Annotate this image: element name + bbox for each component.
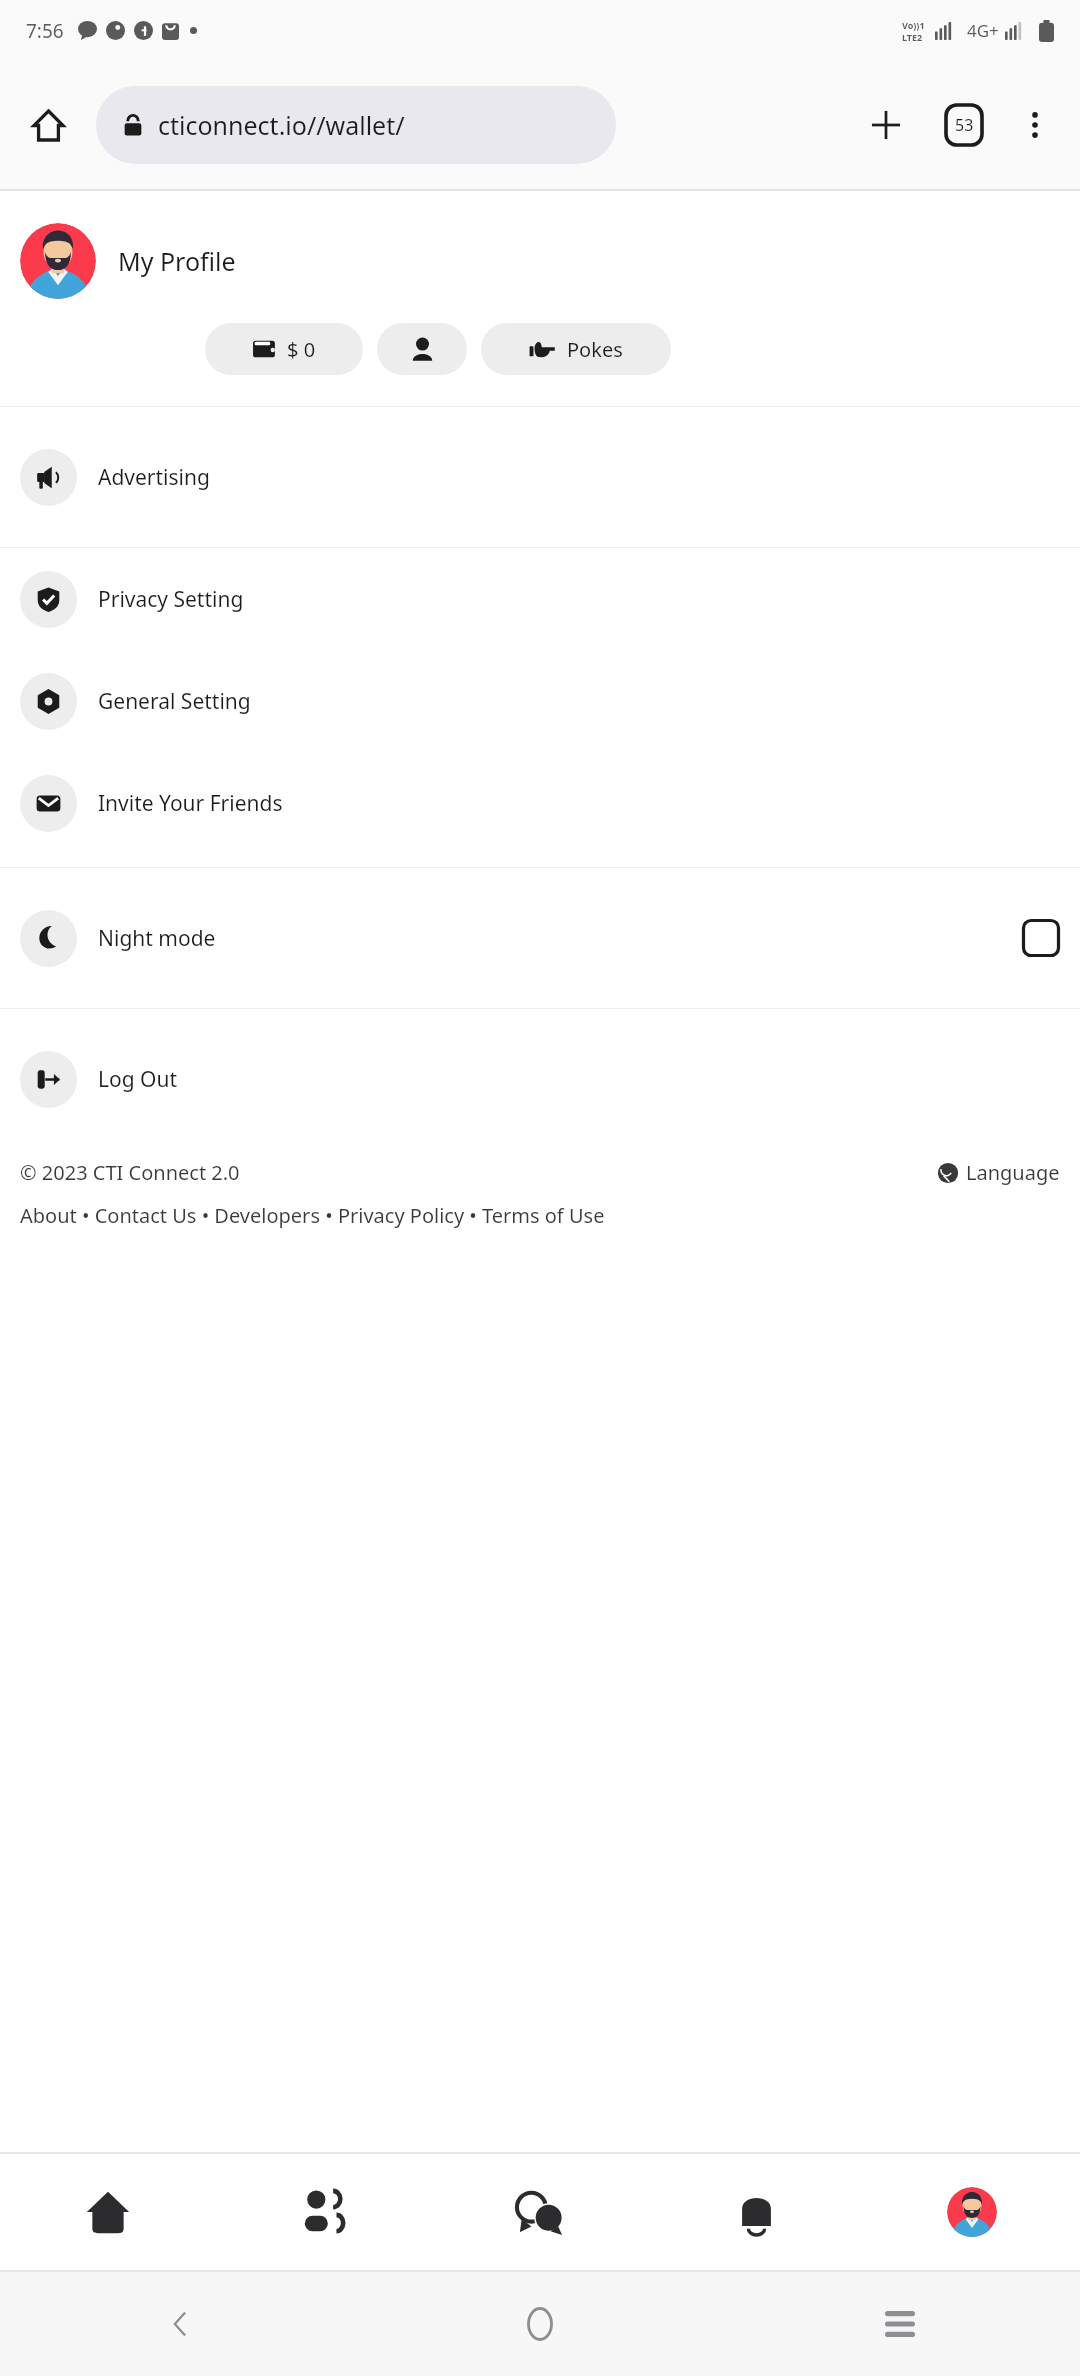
staticText: 53 [955,114,974,136]
staticText: Invite Your Friends [98,789,283,818]
button[interactable]: Invite Your Friends [0,752,1080,854]
button[interactable] [377,323,467,375]
staticText: Log Out [98,1065,178,1094]
button[interactable]: Home [0,2154,216,2270]
button[interactable]: Messages [432,2154,648,2270]
button[interactable]: Privacy Setting [0,548,1080,650]
button[interactable]: Profile [864,2154,1080,2270]
button[interactable]: Night mode [0,868,1080,1008]
button[interactable]: Notifications [648,2154,864,2270]
staticText: 7:56 [26,18,64,44]
button[interactable]: Recent apps [720,2272,1080,2376]
staticText: Night mode [98,924,216,953]
staticText: © 2023 CTI Connect 2.0 [20,1159,240,1186]
button[interactable]: Tabs [938,99,990,151]
button[interactable]: More options [1012,102,1058,148]
staticText: $ 0 [287,336,316,363]
button[interactable]: Language [937,1159,1060,1186]
staticText: Advertising [98,463,210,492]
staticText: Language [966,1159,1060,1186]
button[interactable]: Log Out [0,1009,1080,1149]
staticText: 4G+ [967,19,999,42]
button[interactable]: Night mode toggle [1022,919,1060,957]
button[interactable]: Home [360,2272,720,2376]
button[interactable]: cticonnect.io//wallet/ [96,86,616,164]
button[interactable]: Back [0,2272,360,2376]
staticText: My Profile [118,244,236,278]
button[interactable]: General Setting [0,650,1080,752]
staticText: About • Contact Us • Developers • Privac… [20,1202,605,1229]
button[interactable]: Advertising [0,407,1080,547]
button[interactable]: $ 0 [205,323,363,375]
button[interactable]: Friends [216,2154,432,2270]
button[interactable]: Pokes [481,323,671,375]
staticText: Privacy Setting [98,585,244,614]
staticText: Vo))1 [902,19,925,31]
staticText: cticonnect.io//wallet/ [158,108,405,142]
button[interactable]: Home [22,99,74,151]
staticText: General Setting [98,687,251,716]
button[interactable]: My Profile [0,223,1080,299]
staticText: LTE2 [902,31,923,43]
staticText: Pokes [567,336,623,363]
button[interactable]: New tab [860,99,912,151]
